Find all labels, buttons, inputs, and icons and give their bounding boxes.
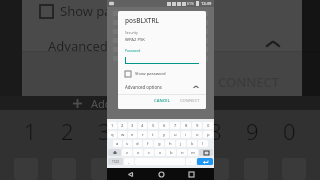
staticText: h [169,141,172,147]
staticText: e [131,132,134,138]
button[interactable]: 2 [118,122,127,129]
button[interactable]: g [154,140,164,147]
button[interactable]: 9 [192,122,202,129]
staticText: 8 [209,116,222,146]
staticText: Security [125,30,138,35]
staticText: 2 [121,123,124,129]
staticText: 4 [135,116,148,146]
button[interactable]: l [198,140,208,147]
button[interactable]: a [113,140,122,147]
staticText: y [163,132,166,138]
staticText: 7 [174,123,177,129]
button[interactable]: r [138,131,147,138]
staticText: g [158,141,161,147]
button[interactable]: , [124,158,134,165]
staticText: Advanced options [125,84,162,90]
staticText: 3 [131,123,134,129]
button[interactable]: v [155,149,165,156]
staticText: q [111,132,114,138]
button[interactable]: . [186,158,196,165]
other: Collapse advanced options [193,85,199,89]
staticText: v [159,150,162,156]
button[interactable]: Show password [118,70,206,78]
button[interactable]: Enter [197,158,213,165]
button[interactable]: p [203,131,213,138]
button[interactable]: u [170,131,180,138]
staticText: w [121,132,125,138]
staticText: 61% [187,1,194,6]
button[interactable]: Backspace [199,149,213,156]
staticText: 8 [185,123,188,129]
button[interactable]: q [108,131,117,138]
staticText: 5 [152,123,155,129]
staticText: t [152,132,154,138]
staticText: 3 [98,116,111,146]
button[interactable]: o [192,131,202,138]
staticText: o [196,132,199,138]
button[interactable]: 3 [128,122,137,129]
button[interactable]: Home [154,168,168,180]
staticText: c [148,150,151,156]
button[interactable]: m [188,149,198,156]
button[interactable]: 5 [148,122,158,129]
button[interactable]: 4 [138,122,147,129]
button[interactable]: f [143,140,153,147]
button[interactable]: 0 [203,122,213,129]
staticText: 12:39 [201,1,212,6]
button[interactable]: 6 [159,122,169,129]
staticText: ?123 [112,160,119,164]
button[interactable]: Recent apps [184,168,198,180]
button[interactable]: Symbols [108,158,123,165]
staticText: 0 [207,123,210,129]
button[interactable]: t [148,131,158,138]
button[interactable]: Advanced options [118,83,206,91]
staticText: Add ne [91,96,128,111]
staticText: f [147,141,149,147]
button[interactable]: n [177,149,187,156]
staticText: d [136,141,139,147]
button[interactable]: h [165,140,175,147]
staticText: z [126,150,128,156]
staticText: 1 [24,116,37,146]
staticText: CONNECT [218,73,280,91]
button[interactable]: y [159,131,169,138]
staticText: p [207,132,210,138]
staticText: Show pa [60,2,112,20]
button[interactable]: 1 [108,122,117,129]
staticText: j [180,141,182,147]
staticText: k [191,141,194,147]
staticText: m [191,150,195,156]
button[interactable]: w [118,131,127,138]
button[interactable]: z [122,149,132,156]
button[interactable]: 8 [181,122,191,129]
button[interactable]: CANCEL [150,96,174,106]
button[interactable]: CONNECT [176,96,206,106]
button[interactable]: k [187,140,197,147]
staticText: posBLXTRL [125,16,160,25]
staticText: . [190,159,192,165]
button[interactable]: d [133,140,142,147]
button[interactable]: s [123,140,132,147]
staticText: s [126,141,129,147]
staticText: 7 [172,116,185,146]
staticText: b [170,150,173,156]
staticText: u [174,132,177,138]
staticText: CANCEL [154,98,170,104]
button[interactable]: e [128,131,137,138]
button[interactable]: c [144,149,154,156]
button[interactable]: x [133,149,143,156]
button[interactable]: Shift [108,149,121,156]
staticText: 1 [111,123,114,129]
staticText: n [181,150,184,156]
button[interactable]: 7 [170,122,180,129]
staticText: l [202,141,204,147]
button[interactable]: b [166,149,176,156]
staticText: x [137,150,140,156]
staticText: i [185,132,187,138]
button[interactable]: i [181,131,191,138]
button[interactable]: j [176,140,186,147]
button[interactable] [125,56,199,63]
button[interactable]: Back [123,168,137,180]
staticText: a [116,141,119,147]
